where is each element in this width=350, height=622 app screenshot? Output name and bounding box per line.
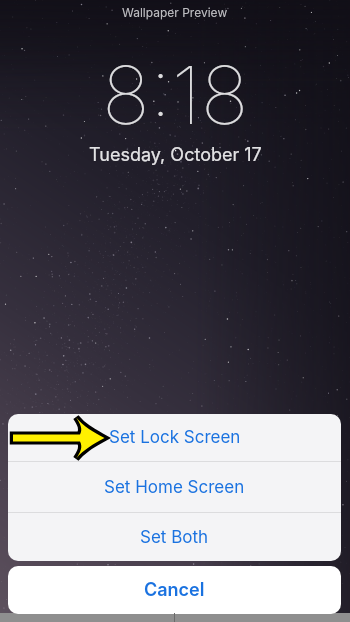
staticText: Wallpaper Preview: [122, 5, 228, 20]
staticText: Set Home Screen: [104, 477, 245, 498]
staticText: 8:18: [102, 46, 249, 143]
button[interactable]: Set Both: [8, 513, 341, 561]
staticText: Cancel: [144, 579, 205, 601]
staticText: Set Both: [140, 527, 209, 548]
button[interactable]: Cancel: [8, 566, 341, 614]
staticText: Set Lock Screen: [109, 427, 241, 448]
staticText: Tuesday, October 17: [89, 144, 262, 166]
button[interactable]: Set Lock Screen: [8, 414, 341, 461]
button[interactable]: Set Home Screen: [8, 462, 341, 512]
